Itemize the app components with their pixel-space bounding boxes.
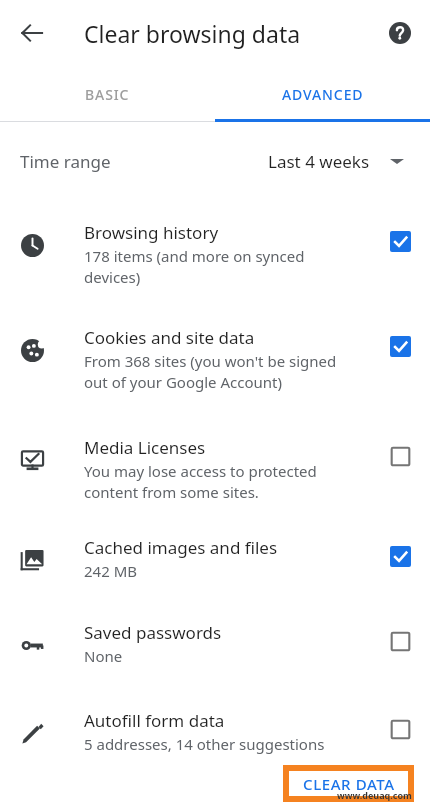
staticText: 242 MB — [84, 561, 137, 581]
staticText: Saved passwords — [84, 621, 222, 644]
button[interactable]: Media Licenses — [389, 445, 411, 467]
button[interactable]: Saved passwords — [389, 630, 411, 652]
staticText: You may lose access to protected content… — [84, 461, 317, 503]
button[interactable]: Help — [378, 11, 422, 55]
staticText: Browsing history — [84, 221, 219, 244]
button[interactable]: Autofill form data — [0, 699, 430, 769]
button[interactable]: ADVANCED — [215, 66, 430, 122]
button[interactable]: Browsing history — [389, 230, 411, 252]
staticText: Cached images and files — [84, 536, 278, 559]
button[interactable]: BASIC — [0, 66, 215, 122]
staticText: Media Licenses — [84, 436, 206, 459]
button[interactable]: Cached images and files — [389, 545, 411, 567]
staticText: Clear browsing data — [84, 18, 301, 49]
staticText: BASIC — [85, 85, 130, 104]
staticText: None — [84, 646, 123, 666]
button[interactable]: Time range — [0, 123, 430, 199]
button[interactable]: Cached images and files — [0, 526, 430, 611]
button[interactable]: Browsing history — [0, 211, 430, 316]
staticText: Time range — [20, 150, 111, 173]
staticText: From 368 sites (you won't be signed out … — [84, 351, 337, 393]
button[interactable]: Cookies and site data — [389, 335, 411, 357]
button[interactable]: Autofill form data — [389, 718, 411, 740]
staticText: www.deuaq.com — [337, 789, 412, 801]
staticText: ADVANCED — [282, 85, 364, 104]
staticText: 178 items (and more on synced devices) — [84, 246, 305, 288]
staticText: Last 4 weeks — [268, 150, 370, 173]
staticText: 5 addresses, 14 other suggestions — [84, 734, 325, 754]
button[interactable]: Back — [8, 9, 56, 57]
staticText: Autofill form data — [84, 709, 225, 732]
staticText: CLEAR DATA — [303, 774, 395, 794]
button[interactable]: Media Licenses — [0, 426, 430, 526]
button[interactable]: CLEAR DATA — [289, 771, 408, 796]
button[interactable]: Saved passwords — [0, 611, 430, 699]
staticText: Cookies and site data — [84, 326, 255, 349]
button[interactable]: Cookies and site data — [0, 316, 430, 426]
